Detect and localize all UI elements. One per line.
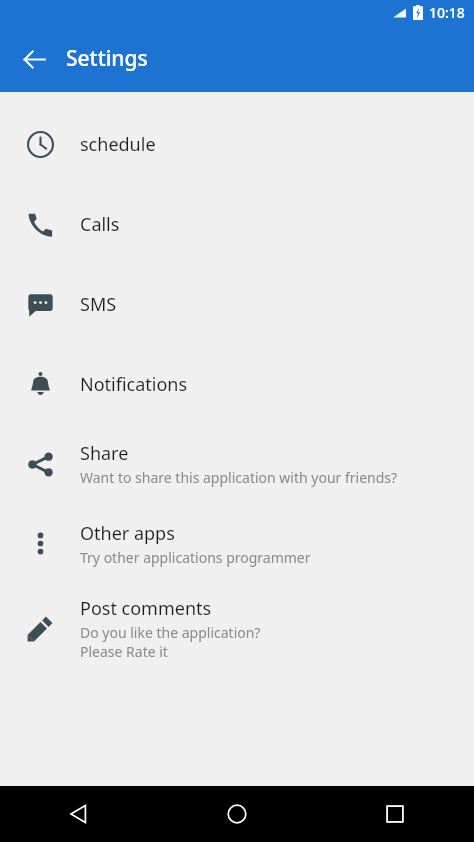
button[interactable]: schedule bbox=[0, 104, 474, 184]
button[interactable]: Post comments bbox=[0, 583, 474, 673]
button[interactable]: Home bbox=[158, 786, 316, 842]
button[interactable]: Calls bbox=[0, 184, 474, 264]
button[interactable]: Back bbox=[12, 37, 56, 81]
staticText: Other apps bbox=[80, 521, 175, 546]
staticText: schedule bbox=[80, 132, 156, 157]
button[interactable]: Other apps bbox=[0, 504, 474, 583]
staticText: Share bbox=[80, 441, 129, 466]
staticText: 10:18 bbox=[429, 3, 465, 22]
button[interactable]: Back bbox=[0, 786, 158, 842]
staticText: Notifications bbox=[80, 372, 188, 397]
staticText: SMS bbox=[80, 292, 117, 317]
staticText: Try other applications programmer bbox=[80, 548, 311, 567]
button[interactable]: Recent apps bbox=[316, 786, 474, 842]
button[interactable]: Notifications bbox=[0, 344, 474, 424]
staticText: Calls bbox=[80, 212, 120, 237]
button[interactable]: Share bbox=[0, 424, 474, 504]
button[interactable]: SMS bbox=[0, 264, 474, 344]
staticText: Do you like the application? Please Rate… bbox=[80, 623, 261, 661]
staticText: Settings bbox=[66, 44, 148, 73]
staticText: Post comments bbox=[80, 596, 212, 621]
staticText: Want to share this application with your… bbox=[80, 468, 398, 487]
